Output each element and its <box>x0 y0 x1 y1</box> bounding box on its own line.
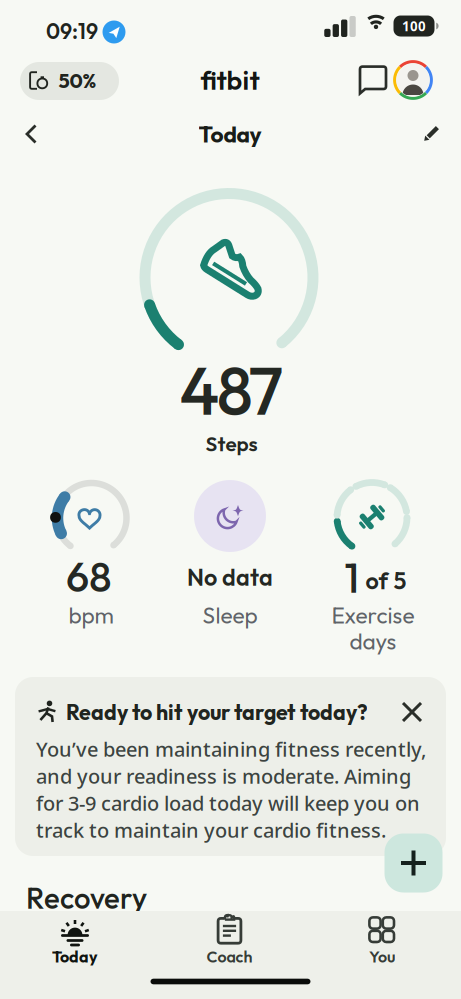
staticText: for 3-9 cardio load today will keep you … <box>36 790 420 816</box>
button[interactable]: Device battery 50% <box>20 62 119 100</box>
staticText: Exercise <box>331 601 414 629</box>
button[interactable]: Back <box>12 114 52 154</box>
staticText: You’ve been maintaining fitness recently… <box>36 736 426 762</box>
staticText: Recovery <box>26 879 147 916</box>
button[interactable]: Sleep, no data <box>163 476 297 646</box>
staticText: Coach <box>206 946 252 967</box>
staticText: days <box>349 627 396 655</box>
staticText: Ready to hit your target today? <box>66 699 368 725</box>
button[interactable]: You <box>337 915 427 975</box>
staticText: Today <box>52 946 98 967</box>
button[interactable]: Heart rate 68 bpm <box>21 476 155 646</box>
staticText: 100 <box>402 17 426 35</box>
staticText: 09:19 <box>46 18 98 44</box>
button[interactable]: Messages <box>356 62 390 96</box>
staticText: of 5 <box>365 566 406 595</box>
staticText: fitbit <box>200 63 259 97</box>
staticText: 50% <box>58 68 96 93</box>
staticText: 68 <box>66 550 112 603</box>
staticText: 1 <box>344 551 359 604</box>
button[interactable]: Add <box>384 833 442 892</box>
staticText: Steps <box>205 430 257 456</box>
button[interactable]: Profile <box>393 60 433 100</box>
staticText: and your readiness is moderate. Aiming <box>36 763 411 789</box>
staticText: bpm <box>68 601 113 629</box>
staticText: No data <box>187 562 273 592</box>
staticText: 487 <box>179 348 283 432</box>
staticText: Today <box>198 120 261 148</box>
button[interactable]: 487 steps <box>115 182 348 472</box>
button[interactable]: Edit <box>412 113 452 153</box>
button[interactable]: Dismiss <box>394 694 430 730</box>
button[interactable]: Today <box>30 915 120 975</box>
staticText: You <box>369 946 395 967</box>
staticText: Sleep <box>202 601 257 629</box>
button[interactable]: Coach <box>184 915 274 975</box>
staticText: track to maintain your cardio fitness. <box>36 817 386 843</box>
button[interactable]: Exercise 1 of 5 days <box>306 476 440 656</box>
